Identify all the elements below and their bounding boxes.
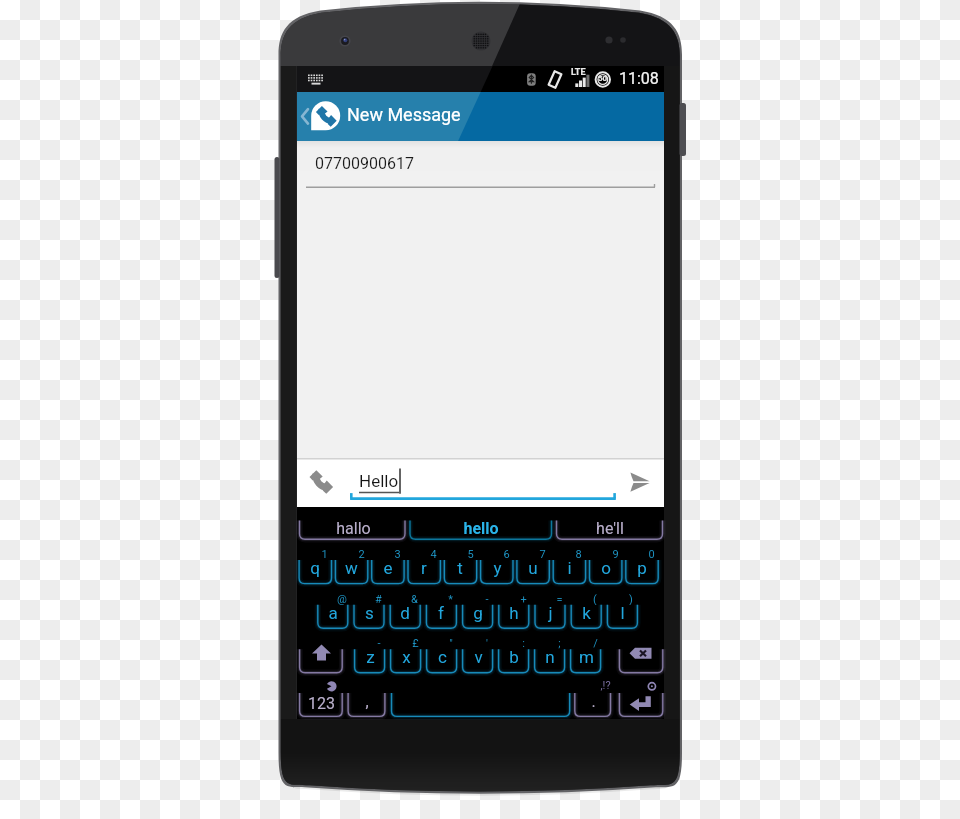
button[interactable]: y (481, 556, 513, 580)
staticText: o (601, 558, 611, 578)
button[interactable] (297, 141, 664, 193)
staticText: k (582, 603, 591, 623)
staticText: hallo (336, 519, 371, 538)
button[interactable]: Call (297, 458, 345, 507)
button[interactable]: w (335, 556, 367, 580)
button[interactable]: a (318, 601, 348, 625)
staticText: ; (558, 637, 561, 649)
staticText: * (448, 593, 453, 605)
staticText: j (548, 603, 553, 623)
staticText: = (556, 593, 563, 605)
staticText: hello (463, 519, 499, 538)
staticText: p (637, 558, 647, 578)
button[interactable]: hallo (300, 517, 406, 539)
staticText: / (593, 637, 598, 649)
button[interactable]: 123 (300, 691, 343, 715)
button[interactable]: he'll (557, 517, 663, 539)
button[interactable]: r (408, 556, 440, 580)
staticText: n (545, 647, 555, 667)
staticText: m (579, 647, 594, 667)
staticText: ,!? (600, 679, 611, 691)
button[interactable]: Backspace (619, 645, 662, 673)
staticText: f (438, 603, 444, 623)
button[interactable]: Space (392, 693, 570, 717)
staticText: he'll (596, 519, 624, 538)
staticText: 4 (430, 548, 437, 560)
button[interactable]: hello (410, 517, 552, 539)
staticText: ' (486, 637, 488, 649)
staticText: + (520, 593, 527, 605)
staticText: @ (337, 593, 347, 605)
button[interactable]: m (571, 645, 601, 669)
staticText: New Message (347, 104, 461, 125)
staticText: w (345, 558, 358, 578)
staticText: d (400, 603, 410, 623)
button[interactable]: n (535, 645, 565, 669)
button[interactable] (347, 458, 617, 507)
staticText: e (383, 558, 393, 578)
staticText: - (485, 593, 489, 605)
staticText: : (522, 637, 525, 649)
button[interactable]: , (348, 689, 385, 713)
button[interactable]: s (354, 601, 384, 625)
staticText: , (365, 692, 369, 711)
button[interactable]: e (372, 556, 404, 580)
staticText: x (402, 647, 411, 667)
staticText: 3 (394, 548, 401, 560)
staticText: b (509, 647, 519, 667)
staticText: z (366, 647, 375, 667)
staticText: ( (593, 593, 597, 605)
staticText: l (620, 603, 625, 623)
button[interactable]: . (575, 689, 611, 713)
button[interactable]: i (553, 556, 585, 580)
staticText: c (438, 647, 447, 667)
staticText: r (421, 558, 427, 578)
staticText: t (457, 558, 463, 578)
staticText: v (474, 647, 483, 667)
button[interactable]: u (517, 556, 549, 580)
button[interactable]: p (626, 556, 658, 580)
button[interactable]: t (444, 556, 476, 580)
button[interactable]: h (499, 601, 529, 625)
button[interactable]: d (390, 601, 420, 625)
button[interactable]: Back (297, 92, 664, 141)
staticText: . (591, 692, 596, 711)
button[interactable]: Shift (300, 643, 343, 673)
button[interactable]: k (571, 601, 601, 625)
staticText: g (473, 603, 483, 623)
staticText: 11:08 (619, 69, 659, 88)
staticText: q (310, 558, 320, 578)
staticText: & (411, 593, 418, 605)
button[interactable]: q (299, 556, 331, 580)
staticText: y (493, 558, 502, 578)
staticText: 2 (358, 548, 365, 560)
button[interactable]: g (463, 601, 493, 625)
staticText: 0 (648, 548, 655, 560)
staticText: Hello (359, 471, 399, 491)
staticText: 1 (321, 548, 328, 560)
button[interactable]: Send (618, 458, 664, 507)
staticText: 5 (467, 548, 474, 560)
staticText: 9 (612, 548, 619, 560)
button[interactable]: Enter (619, 693, 662, 717)
button[interactable]: c (427, 645, 457, 669)
staticText: - (377, 637, 381, 649)
button[interactable]: v (463, 645, 493, 669)
staticText: 50 (598, 74, 608, 83)
staticText: " (449, 637, 453, 649)
button[interactable]: f (426, 601, 456, 625)
staticText: 07700900617 (315, 154, 414, 173)
button[interactable]: x (391, 645, 421, 669)
staticText: 123 (308, 694, 335, 713)
staticText: LTE (571, 67, 586, 78)
button[interactable]: l (607, 601, 637, 625)
staticText: 6 (503, 548, 510, 560)
button[interactable]: j (535, 601, 565, 625)
button[interactable]: b (499, 645, 529, 669)
staticText: i (567, 558, 572, 578)
button[interactable]: z (355, 645, 385, 669)
staticText: ) (629, 593, 633, 605)
button[interactable]: Back (297, 92, 313, 141)
staticText: # (375, 593, 382, 605)
button[interactable]: o (590, 556, 622, 580)
